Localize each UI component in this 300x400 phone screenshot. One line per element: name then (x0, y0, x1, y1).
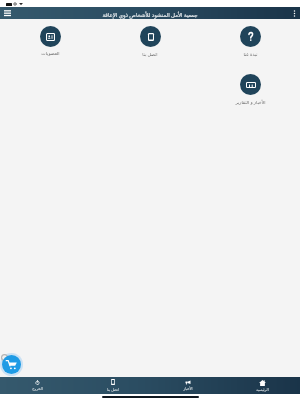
staticText: الخروج (32, 387, 43, 391)
button[interactable]: الأخبار (150, 377, 225, 394)
staticText: الأخبار (183, 387, 193, 391)
button[interactable]: الأخبار و التقارير (200, 67, 300, 115)
button[interactable]: اتصل بنا (75, 377, 150, 394)
staticText: الرئيسية (256, 388, 269, 392)
staticText: اتصل بنا (107, 387, 119, 392)
staticText: جمعية الأمل المنشود للأشخاص ذوي الإعاقة (102, 11, 198, 18)
button[interactable]: الخروج (0, 377, 75, 394)
button[interactable]: العضويات (0, 19, 100, 66)
staticText: نبذة عنا (243, 51, 258, 57)
button[interactable]: الرئيسية (225, 377, 300, 394)
button[interactable]: اتصل بنا (100, 19, 200, 67)
staticText: اتصل بنا (142, 51, 158, 57)
staticText: الأخبار و التقارير (235, 99, 266, 105)
staticText: العضويات (41, 51, 60, 56)
button[interactable]: المزيد من الخيارات (288, 7, 300, 19)
button[interactable]: نبذة عنا (200, 19, 300, 67)
button[interactable]: سلة التسوق (2, 355, 21, 374)
button[interactable]: القائمة (0, 7, 14, 19)
